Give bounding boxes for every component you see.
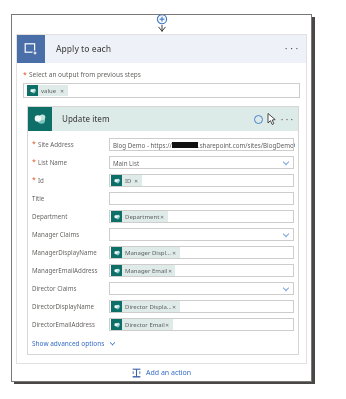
staticText: ✕	[165, 322, 170, 328]
staticText: Director Email	[125, 321, 165, 329]
button[interactable]	[109, 192, 294, 205]
staticText: Manager Email	[125, 267, 168, 275]
staticText: ✕	[60, 88, 65, 94]
button[interactable]: ID	[109, 174, 294, 187]
staticText: Manager Displ...	[125, 249, 171, 257]
button[interactable]: Manager Email	[109, 264, 294, 277]
staticText: Director Claims	[32, 284, 77, 292]
button[interactable]: Blog Demo - https://	[109, 138, 294, 151]
staticText: Main List	[113, 159, 140, 167]
button[interactable]: Director Displa...	[109, 300, 294, 313]
staticText: List Name	[38, 158, 68, 166]
staticText: • • •	[285, 45, 299, 53]
staticText: Department	[32, 212, 68, 220]
button[interactable]: value	[23, 83, 300, 98]
button[interactable]: Update item	[27, 106, 299, 131]
staticText: Blog Demo - https://	[113, 141, 172, 149]
staticText: • • •	[281, 116, 293, 123]
staticText: value	[41, 87, 57, 95]
staticText: ✕	[134, 178, 139, 184]
button[interactable]	[109, 228, 294, 241]
button[interactable]: Insert a new step	[151, 14, 173, 34]
button[interactable]: Show advanced options	[32, 339, 116, 348]
button[interactable]: More commands	[278, 110, 296, 128]
button[interactable]: Department	[109, 210, 294, 223]
staticText: *	[32, 175, 36, 185]
button[interactable]: Main List	[109, 156, 294, 169]
staticText: ✕	[172, 304, 177, 310]
staticText: Id	[38, 176, 44, 184]
button[interactable]: Manager Displ...	[109, 246, 294, 259]
staticText: Show advanced options	[32, 339, 105, 348]
button[interactable]: More commands	[281, 38, 303, 60]
button[interactable]: Add an action	[127, 364, 196, 382]
staticText: .sharepoint.com/sites/BlogDemo	[198, 141, 294, 149]
staticText: Department	[125, 213, 160, 221]
staticText: Site Address	[38, 140, 74, 148]
staticText: DirectorEmailAddress	[32, 320, 95, 328]
button[interactable]: Apply to each	[16, 34, 307, 63]
staticText: ManagerDisplayName	[32, 248, 97, 256]
staticText: Title	[32, 194, 45, 202]
button[interactable]	[109, 282, 294, 295]
staticText: Select an output from previous steps	[29, 70, 141, 79]
staticText: Update item	[62, 113, 110, 124]
staticText: ManagerEmailAddress	[32, 266, 98, 274]
button[interactable]: Information	[249, 110, 267, 128]
staticText: ✕	[168, 268, 172, 274]
staticText: Apply to each	[56, 43, 112, 55]
staticText: DirectorDisplayName	[32, 302, 95, 310]
staticText: Director Displa...	[125, 303, 172, 311]
staticText: Manager Claims	[32, 230, 80, 238]
staticText: ID	[125, 177, 132, 185]
staticText: *	[23, 70, 27, 80]
button[interactable]: Director Email	[109, 318, 294, 331]
staticText: *	[32, 139, 36, 149]
staticText: *	[32, 157, 36, 167]
staticText: ✕	[160, 214, 165, 220]
staticText: ✕	[172, 250, 177, 256]
staticText: Add an action	[146, 368, 192, 378]
